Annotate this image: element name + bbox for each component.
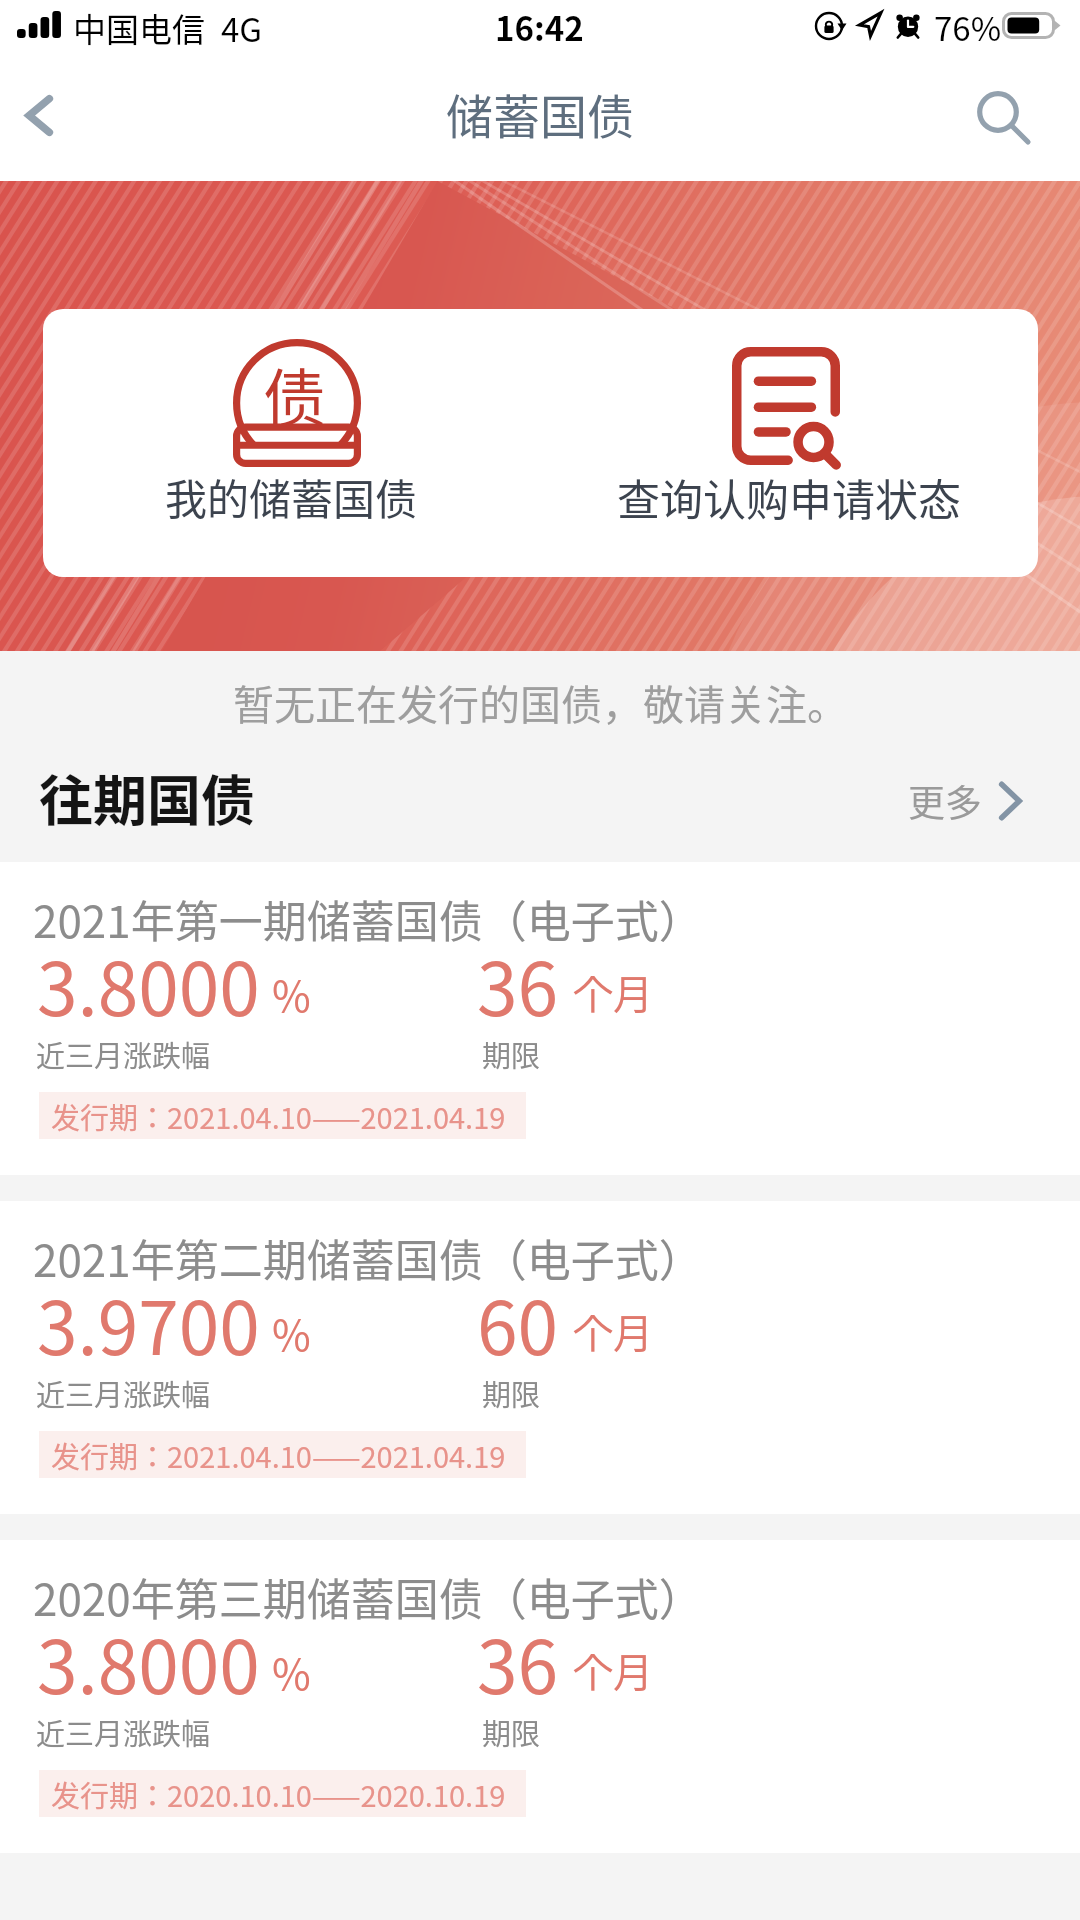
staticText: 中国电信	[73, 4, 205, 52]
staticText: 个月	[573, 1641, 653, 1699]
button[interactable]: 查询认购申请状态	[540, 309, 1038, 577]
staticText: 2021年第二期储蓄国债（电子式）	[33, 1226, 703, 1290]
staticText: 近三月涨跌幅	[36, 1033, 211, 1075]
button[interactable]: 2021年第一期储蓄国债（电子式）	[0, 862, 1080, 1175]
staticText: 60	[477, 1270, 559, 1376]
staticText: 往期国债	[39, 758, 255, 836]
staticText: %	[272, 963, 311, 1024]
button[interactable]: 搜索	[960, 60, 1080, 181]
staticText: 16:42	[495, 3, 584, 51]
staticText: 期限	[482, 1711, 541, 1753]
staticText: %	[272, 1641, 311, 1702]
staticText: 债	[263, 348, 326, 439]
staticText: 发行期：2021.04.10——2021.04.19	[51, 1095, 506, 1137]
button[interactable]: 债	[43, 309, 540, 577]
staticText: 更多	[908, 774, 982, 828]
staticText: 暂无正在发行的国债，敬请关注。	[233, 672, 848, 731]
button[interactable]: 2020年第三期储蓄国债（电子式）	[0, 1540, 1080, 1853]
staticText: 期限	[482, 1372, 541, 1414]
staticText: 3.9700	[37, 1270, 260, 1376]
staticText: 查询认购申请状态	[617, 466, 961, 528]
staticText: 近三月涨跌幅	[36, 1711, 211, 1753]
staticText: 3.8000	[37, 931, 260, 1037]
staticText: 2021年第一期储蓄国债（电子式）	[33, 887, 703, 951]
staticText: 个月	[573, 963, 653, 1021]
staticText: 储蓄国债	[446, 79, 634, 147]
staticText: 个月	[573, 1302, 653, 1360]
staticText: 3.8000	[37, 1609, 260, 1715]
staticText: 4G	[221, 4, 263, 52]
staticText: 76%	[934, 3, 1002, 51]
staticText: 36	[477, 931, 559, 1037]
staticText: 36	[477, 1609, 559, 1715]
button[interactable]: 返回	[0, 60, 80, 181]
button[interactable]: 2021年第二期储蓄国债（电子式）	[0, 1201, 1080, 1514]
button[interactable]: 更多	[908, 774, 1021, 828]
staticText: 2020年第三期储蓄国债（电子式）	[33, 1565, 703, 1629]
staticText: 发行期：2020.10.10——2020.10.19	[51, 1773, 506, 1815]
staticText: 发行期：2021.04.10——2021.04.19	[51, 1434, 506, 1476]
staticText: 近三月涨跌幅	[36, 1372, 211, 1414]
staticText: 我的储蓄国债	[165, 466, 418, 527]
staticText: 期限	[482, 1033, 541, 1075]
staticText: %	[272, 1302, 311, 1363]
